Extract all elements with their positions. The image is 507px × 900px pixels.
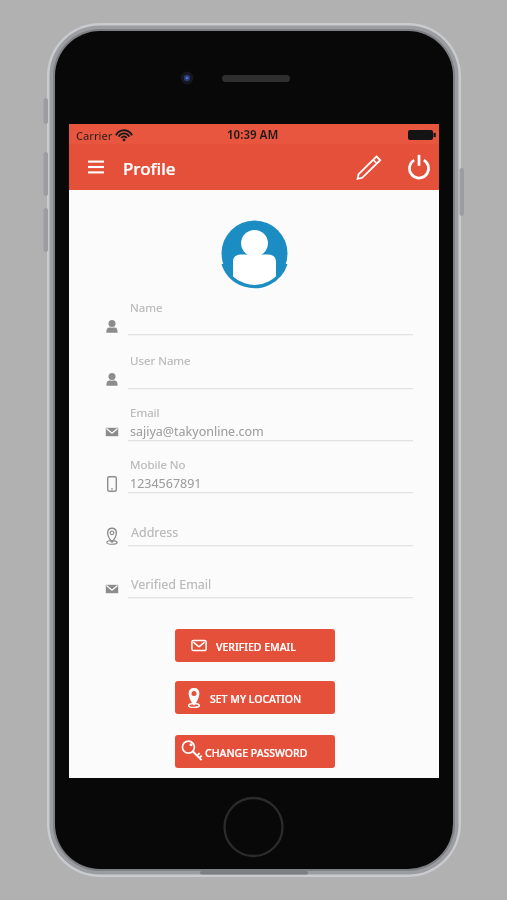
button[interactable] (175, 681, 335, 714)
button[interactable]: Edit profile (352, 150, 388, 186)
staticText: sajiya@takyonline.com (130, 423, 264, 440)
button[interactable] (104, 449, 413, 496)
button[interactable] (175, 735, 335, 768)
button[interactable] (104, 345, 413, 392)
staticText: Name (130, 300, 163, 316)
staticText: 10:39 AM (227, 127, 279, 143)
button[interactable] (104, 516, 413, 549)
staticText: Email (130, 405, 160, 421)
staticText: 1234567891 (130, 475, 202, 492)
staticText: Address (131, 524, 179, 541)
staticText: SET MY LOCATION (210, 692, 302, 706)
button[interactable] (104, 568, 413, 601)
button[interactable]: Profile photo (220, 219, 289, 288)
staticText: Verified Email (131, 576, 212, 593)
staticText: Mobile No (130, 457, 186, 473)
staticText: VERIFIED EMAIL (216, 640, 296, 654)
staticText: Carrier (76, 128, 113, 143)
button[interactable] (175, 629, 335, 662)
staticText: Profile (123, 157, 176, 180)
staticText: CHANGE PASSWORD (205, 746, 308, 760)
button[interactable] (104, 292, 413, 338)
staticText: User Name (130, 353, 191, 369)
button[interactable] (104, 397, 413, 444)
button[interactable]: Menu (79, 150, 115, 186)
button[interactable]: Log out (402, 150, 438, 186)
